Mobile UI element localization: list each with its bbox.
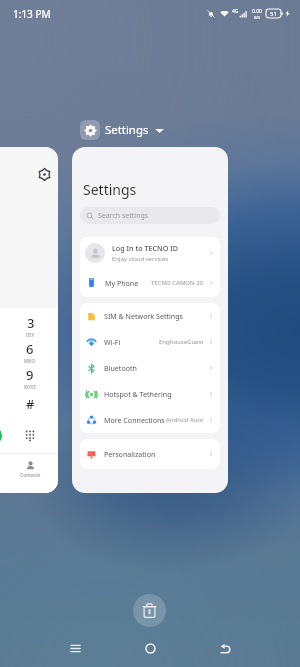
staticText: B/S — [254, 15, 261, 20]
staticText: WXYZ — [24, 384, 36, 390]
staticText: Hotspot & Tethering — [104, 389, 172, 399]
button[interactable]: Hotspot & Tethering — [86, 381, 215, 407]
staticText: 4G — [232, 8, 239, 15]
staticText: More Connections — [104, 415, 165, 425]
button[interactable]: More Connections — [86, 407, 215, 433]
button[interactable]: Bluetooth — [86, 355, 215, 381]
staticText: Settings — [105, 122, 149, 138]
staticText: Contacts — [20, 472, 41, 479]
staticText: 6 — [26, 340, 34, 358]
button[interactable]: SIM & Network Settings — [86, 303, 215, 329]
staticText: Bluetooth — [104, 363, 137, 373]
staticText: MNO — [24, 358, 36, 364]
button[interactable]: 3 — [0, 147, 58, 493]
staticText: # — [26, 395, 35, 413]
staticText: My Phone — [105, 278, 139, 288]
button[interactable]: Wi-Fi — [86, 329, 215, 355]
button[interactable]: Search settings — [80, 207, 220, 224]
staticText: 51 — [270, 10, 277, 18]
button[interactable]: Settings — [80, 120, 164, 140]
staticText: Android Auto — [166, 416, 204, 424]
button[interactable]: Back — [207, 631, 243, 667]
button[interactable]: My Phone — [86, 268, 215, 297]
staticText: Log In to TECNO ID — [112, 243, 178, 253]
button[interactable]: Log In to TECNO ID — [85, 237, 215, 268]
staticText: 1:13 PM — [13, 7, 51, 21]
button[interactable]: Settings — [72, 147, 228, 493]
button[interactable]: Call — [0, 426, 2, 445]
staticText: 0.00 — [252, 8, 262, 15]
staticText: EnghouseGuest — [159, 338, 204, 346]
button[interactable]: Personalization — [86, 439, 215, 469]
staticText: Settings — [83, 180, 137, 199]
staticText: Personalization — [104, 449, 156, 459]
staticText: SIM & Network Settings — [104, 311, 183, 321]
staticText: Search settings — [98, 211, 149, 221]
button[interactable]: Clear all — [133, 594, 166, 627]
staticText: 9 — [26, 366, 34, 384]
button[interactable]: Home — [132, 631, 168, 667]
staticText: Enjoy cloud services — [112, 255, 169, 263]
staticText: Wi-Fi — [104, 337, 121, 347]
button[interactable]: Recents — [57, 631, 93, 667]
staticText: DEF — [26, 332, 35, 338]
staticText: TECNO CAMON 20 — [151, 279, 204, 287]
staticText: 3 — [27, 314, 35, 332]
